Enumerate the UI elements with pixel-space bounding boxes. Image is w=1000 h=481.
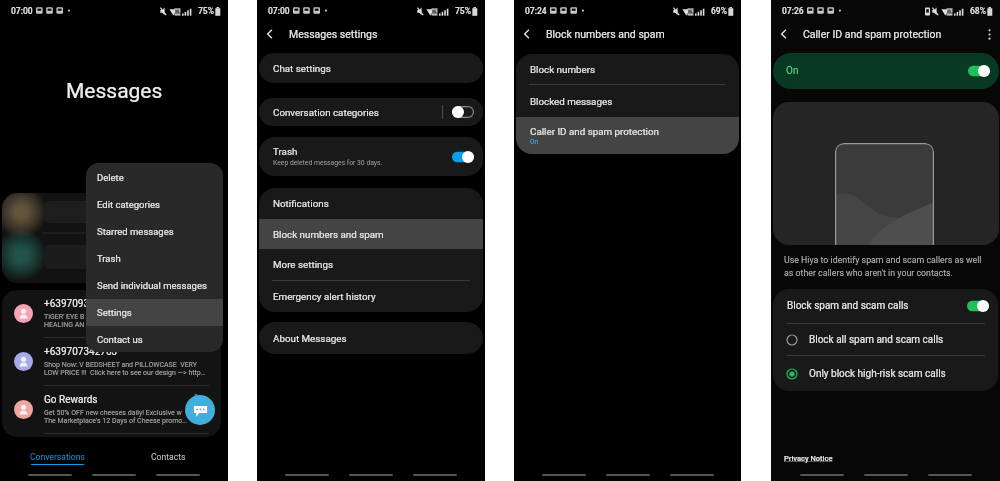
staticText: About Messages [273, 333, 347, 344]
staticText: Conversations [30, 452, 85, 462]
button[interactable]: Block numbers and spam [259, 219, 483, 249]
button[interactable]: Toggle switch [967, 300, 989, 312]
staticText: 07:00 [11, 6, 33, 16]
staticText: Get 50% OFF new cheeses daily! Exclusive… [44, 409, 182, 417]
button[interactable]: On [773, 53, 999, 89]
button[interactable]: Contact us [86, 326, 223, 352]
button[interactable]: Blocked messages [516, 85, 739, 117]
button[interactable]: Dec 15 [2, 338, 221, 385]
staticText: 5 [194, 393, 198, 401]
staticText: TIGER' EYE B [44, 313, 85, 321]
staticText: Block numbers and spam [273, 229, 384, 240]
staticText: 07:26 [782, 6, 804, 16]
staticText: HEALING AN [44, 321, 85, 329]
button[interactable]: Emergency alert history [259, 281, 483, 312]
staticText: Settings [97, 307, 132, 318]
button[interactable]: Toggle switch [452, 106, 474, 118]
staticText: Caller ID and spam protection [530, 126, 659, 137]
staticText: More settings [273, 259, 334, 270]
button[interactable]: About Messages [259, 322, 483, 354]
staticText: Only block high-risk scam calls [809, 368, 946, 380]
button[interactable]: New conversation [185, 395, 215, 425]
staticText: Block all spam and scam calls [809, 334, 944, 346]
button[interactable]: Delete [86, 164, 223, 191]
button[interactable]: Caller ID and spam protection [516, 117, 739, 154]
staticText: +639707342763 [44, 346, 118, 358]
staticText: Emergency alert history [273, 291, 376, 302]
staticText: Block numbers and spam [546, 28, 665, 40]
button[interactable]: Contacts [151, 452, 186, 462]
button[interactable]: Block all spam and scam calls [773, 324, 998, 355]
staticText: Shop Now: V BEDSHEET and PILLOWCASE VERY [44, 361, 197, 369]
staticText: as other callers who aren't in your cont… [784, 268, 953, 278]
staticText: Blocked messages [530, 96, 613, 107]
staticText: Edit categories [97, 199, 160, 210]
button[interactable]: Starred messages [86, 218, 223, 245]
staticText: The Marketplace's 12 Days of Cheese prom… [44, 417, 188, 425]
staticText: Dec 15 [194, 345, 215, 353]
button[interactable]: More options [978, 23, 1000, 45]
staticText: Conversation categories [273, 107, 379, 118]
button[interactable]: Navigate up [771, 21, 797, 47]
staticText: Block numbers [530, 64, 596, 75]
staticText: Block spam and scam calls [787, 300, 909, 312]
button[interactable]: Chat settings [259, 53, 483, 83]
button[interactable]: Settings [86, 299, 223, 326]
staticText: Contact us [97, 334, 143, 345]
button[interactable]: Privacy Notice [784, 454, 833, 463]
button[interactable]: 5 [2, 386, 221, 433]
staticText: +63970933 [44, 298, 95, 310]
button[interactable]: Conversations [0, 444, 114, 470]
button[interactable]: Trash [259, 137, 483, 176]
staticText: Go Rewards [44, 394, 98, 406]
staticText: Keep deleted messages for 30 days. [273, 159, 383, 167]
staticText: 69% [711, 6, 727, 16]
button[interactable]: Send individual messages [86, 272, 223, 299]
button[interactable]: Only block high-risk scam calls [773, 356, 998, 391]
button[interactable]: Edit categories [86, 191, 223, 218]
staticText: On [530, 138, 539, 146]
staticText: Starred messages [97, 226, 174, 237]
button[interactable]: More settings [259, 249, 483, 280]
button[interactable]: Toggle switch [968, 65, 990, 77]
button[interactable]: Block numbers [516, 54, 739, 84]
staticText: LOW PRICE !!! Click here to see our desi… [44, 369, 206, 377]
staticText: Notifications [273, 198, 329, 209]
staticText: Chat settings [273, 63, 331, 74]
staticText: Caller ID and spam protection [803, 28, 942, 40]
staticText: Dec 16 [194, 297, 215, 305]
staticText: Messages [66, 79, 163, 104]
button[interactable]: Toggle switch [452, 151, 474, 163]
button[interactable]: Navigate up [514, 21, 540, 47]
staticText: 07:24 [525, 6, 547, 16]
button[interactable]: Navigate up [257, 21, 283, 47]
staticText: Trash [97, 253, 121, 264]
button[interactable]: Block spam and scam calls [773, 289, 998, 323]
staticText: Contacts [151, 452, 186, 462]
staticText: 75% [455, 6, 471, 16]
staticText: Delete [97, 172, 124, 183]
staticText: 07:00 [268, 6, 290, 16]
staticText: Messages settings [289, 28, 378, 40]
button[interactable]: Trash [86, 245, 223, 272]
staticText: On [786, 65, 968, 77]
staticText: Use Hiya to identify spam and scam calle… [784, 255, 982, 265]
button[interactable]: Conversation categories [259, 98, 483, 126]
staticText: 75% [198, 6, 214, 16]
staticText: 68% [970, 6, 986, 16]
button[interactable]: Notifications [259, 188, 483, 219]
staticText: Send individual messages [97, 280, 207, 291]
button[interactable]: Dec 16 [2, 290, 221, 337]
staticText: Trash [273, 146, 298, 157]
